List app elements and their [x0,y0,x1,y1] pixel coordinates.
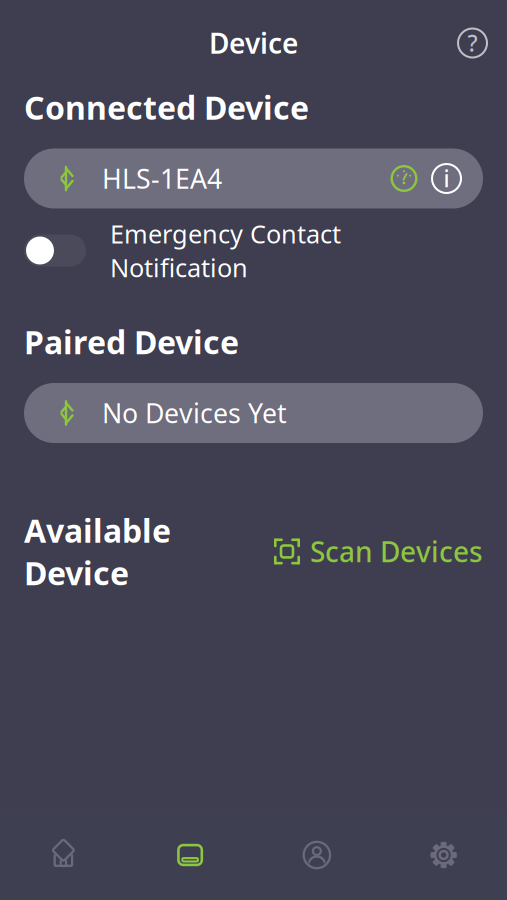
button[interactable]: Scan Devices [274,533,483,570]
staticText: Emergency Contact Notification [110,217,341,284]
staticText: No Devices Yet [102,395,287,431]
staticText: Scan Devices [310,533,483,570]
button[interactable]: Profile [253,823,380,887]
button[interactable]: Emergency Contact Notification [24,226,483,274]
button[interactable]: Device [127,823,254,887]
button[interactable]: Home [0,823,127,887]
staticText: Device [209,24,298,62]
staticText: Paired Device [24,320,239,363]
button[interactable]: No Devices Yet [24,383,483,443]
button[interactable]: Help [450,20,495,65]
staticText: HLS-1EA4 [102,161,222,196]
staticText: ? [467,28,477,58]
staticText: i [443,163,449,193]
button[interactable]: HLS-1EA4 [24,148,483,208]
staticText: Connected Device [24,86,309,128]
staticText: Available Device [24,509,171,594]
button[interactable]: Settings [380,823,507,887]
